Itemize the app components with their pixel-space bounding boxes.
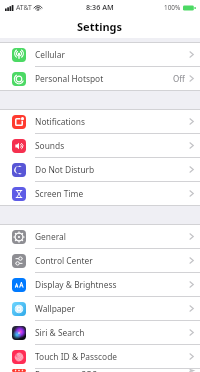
staticText: Sounds — [35, 140, 65, 151]
button[interactable]: Wallpaper — [0, 297, 200, 321]
button[interactable]: General — [0, 225, 200, 249]
staticText: Control Center — [35, 255, 93, 266]
staticText: AT&T — [16, 3, 32, 12]
other: Screen Time — [12, 187, 26, 201]
other: Notifications — [12, 115, 26, 129]
button[interactable]: Touch ID and Passcode — [0, 345, 200, 369]
staticText: Emergency SOS — [35, 369, 97, 372]
other: General — [12, 230, 26, 244]
button[interactable]: Emergency SOS — [0, 369, 200, 372]
other: Wallpaper — [12, 302, 26, 316]
button[interactable]: Display and Brightness — [0, 273, 200, 297]
staticText: General — [35, 231, 66, 242]
other: Control Center — [12, 254, 26, 268]
button[interactable]: Do Not Disturb — [0, 158, 200, 182]
staticText: Do Not Disturb — [35, 164, 95, 175]
staticText: Settings — [77, 19, 123, 34]
button[interactable]: Cellular — [0, 43, 200, 67]
other: Siri and Search — [12, 326, 26, 340]
other: Cellular — [12, 48, 26, 62]
button[interactable]: Notifications — [0, 110, 200, 134]
other: Display and Brightness — [12, 278, 26, 292]
other: Do Not Disturb — [12, 163, 26, 177]
button[interactable]: Screen Time — [0, 182, 200, 205]
staticText: 100% — [164, 3, 181, 12]
staticText: Notifications — [35, 116, 85, 127]
button[interactable]: Control Center — [0, 249, 200, 273]
other: Touch ID and Passcode — [12, 350, 26, 364]
staticText: Siri & Search — [35, 327, 85, 338]
staticText: Wallpaper — [35, 303, 75, 314]
staticText: Off — [173, 73, 185, 84]
other: Emergency SOS — [12, 369, 26, 372]
staticText: Screen Time — [35, 188, 84, 199]
button[interactable]: Sounds — [0, 134, 200, 158]
other: Personal Hotspot — [12, 72, 26, 86]
staticText: Personal Hotspot — [35, 73, 104, 84]
button[interactable]: Personal Hotspot — [0, 67, 200, 90]
staticText: 8:36 AM — [86, 2, 114, 12]
staticText: Touch ID & Passcode — [35, 351, 118, 362]
other: Sounds — [12, 139, 26, 153]
button[interactable]: Siri and Search — [0, 321, 200, 345]
staticText: Cellular — [35, 49, 65, 60]
staticText: Display & Brightness — [35, 279, 117, 290]
